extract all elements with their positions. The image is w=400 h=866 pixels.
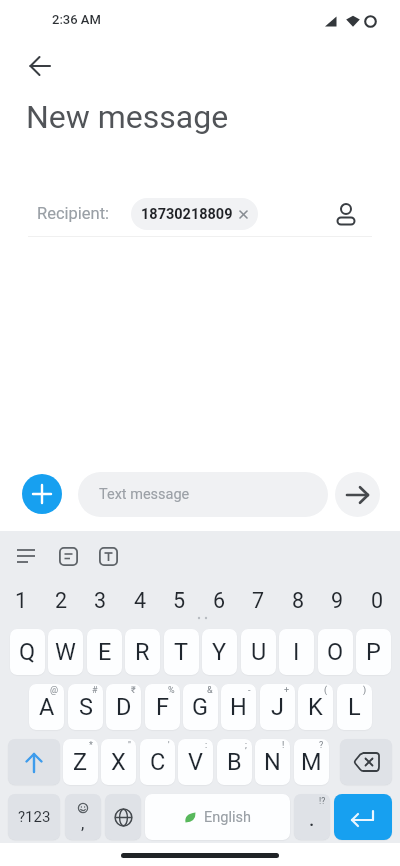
button[interactable] — [340, 739, 392, 785]
button[interactable]: T — [164, 629, 199, 675]
button[interactable] — [50, 540, 86, 572]
button[interactable]: R — [125, 629, 160, 675]
staticText: A — [39, 693, 55, 721]
button[interactable] — [326, 192, 366, 236]
button[interactable]: E — [87, 629, 122, 675]
button[interactable]: J — [260, 684, 295, 730]
staticText: 8 — [292, 588, 305, 613]
staticText: English — [204, 809, 251, 826]
button[interactable]: V — [178, 739, 213, 785]
staticText: W — [55, 638, 76, 666]
button[interactable]: 18730218809 — [131, 198, 258, 230]
button[interactable]: 4 — [121, 585, 159, 615]
button[interactable] — [22, 474, 62, 514]
staticText: 6 — [213, 588, 226, 613]
staticText: ) — [363, 685, 367, 696]
staticText: ?123 — [18, 808, 51, 826]
staticText: - — [248, 685, 251, 696]
staticText: H — [230, 693, 247, 721]
button[interactable]: G — [183, 684, 218, 730]
button[interactable]: ?123 — [8, 794, 60, 840]
staticText: * — [89, 740, 93, 751]
staticText: 5 — [173, 588, 186, 613]
button[interactable]: 8 — [279, 585, 317, 615]
staticText: M — [301, 748, 322, 776]
button[interactable]: C — [140, 739, 175, 785]
staticText: X — [111, 748, 126, 776]
button[interactable]: F — [145, 684, 180, 730]
button[interactable]: , — [65, 794, 101, 840]
staticText: 7 — [252, 588, 265, 613]
staticText: ; — [245, 740, 247, 751]
staticText: 2:36 AM — [52, 12, 101, 27]
staticText: , — [81, 813, 85, 833]
button[interactable]: O — [318, 629, 353, 675]
staticText: Recipient: — [37, 204, 110, 223]
staticText: S — [79, 693, 93, 721]
staticText: 9 — [331, 588, 344, 613]
staticText: B — [227, 748, 242, 776]
button[interactable]: 6 — [200, 585, 238, 615]
staticText: % — [168, 685, 175, 696]
button[interactable] — [105, 794, 141, 840]
staticText: O — [327, 638, 344, 666]
button[interactable]: N — [255, 739, 290, 785]
button[interactable]: B — [217, 739, 252, 785]
button[interactable]: 5 — [160, 585, 198, 615]
button[interactable]: D — [106, 684, 141, 730]
button[interactable]: A — [29, 684, 64, 730]
staticText: 1 — [15, 588, 28, 613]
button[interactable]: K — [298, 684, 333, 730]
button[interactable]: P — [356, 629, 391, 675]
button[interactable] — [90, 540, 126, 572]
button[interactable]: M — [294, 739, 329, 785]
staticText: R — [135, 638, 150, 666]
button[interactable]: W — [48, 629, 83, 675]
button[interactable]: U — [241, 629, 276, 675]
staticText: ' — [168, 740, 170, 751]
staticText: 2 — [55, 588, 68, 613]
staticText: E — [98, 638, 112, 666]
button[interactable]: I — [279, 629, 314, 675]
staticText: D — [116, 693, 132, 721]
button[interactable] — [8, 739, 60, 785]
staticText: P — [366, 638, 381, 666]
button[interactable]: 7 — [239, 585, 277, 615]
staticText: ₹ — [131, 685, 136, 696]
staticText: I — [293, 638, 300, 666]
button[interactable]: 2 — [42, 585, 80, 615]
button[interactable]: 3 — [81, 585, 119, 615]
button[interactable]: X — [101, 739, 136, 785]
button[interactable]: !? — [294, 794, 330, 840]
staticText: Z — [73, 748, 88, 776]
staticText: V — [188, 748, 203, 776]
button[interactable]: Q — [10, 629, 45, 675]
button[interactable]: 1 — [2, 585, 40, 615]
staticText: Text message — [99, 486, 190, 503]
button[interactable]: 0 — [358, 585, 396, 615]
button[interactable]: English — [145, 794, 290, 840]
staticText: 18730218809 — [141, 206, 233, 223]
staticText: F — [156, 693, 169, 721]
staticText: Q — [19, 638, 36, 666]
button[interactable]: Text message — [78, 472, 328, 517]
staticText: K — [308, 693, 323, 721]
button[interactable] — [16, 44, 64, 88]
button[interactable]: H — [221, 684, 256, 730]
button[interactable]: Y — [202, 629, 237, 675]
button[interactable] — [334, 794, 392, 840]
staticText: : — [205, 740, 208, 751]
button[interactable] — [335, 472, 380, 517]
staticText: Y — [212, 638, 227, 666]
button[interactable]: L — [337, 684, 372, 730]
staticText: @ — [50, 685, 59, 696]
button[interactable] — [8, 540, 44, 572]
staticText: J — [271, 693, 284, 721]
staticText: 0 — [371, 588, 384, 613]
button[interactable]: S — [68, 684, 103, 730]
button[interactable]: Z — [63, 739, 98, 785]
button[interactable]: 9 — [318, 585, 356, 615]
staticText: New message — [26, 98, 229, 136]
staticText: !? — [319, 796, 326, 806]
staticText: 3 — [94, 588, 107, 613]
